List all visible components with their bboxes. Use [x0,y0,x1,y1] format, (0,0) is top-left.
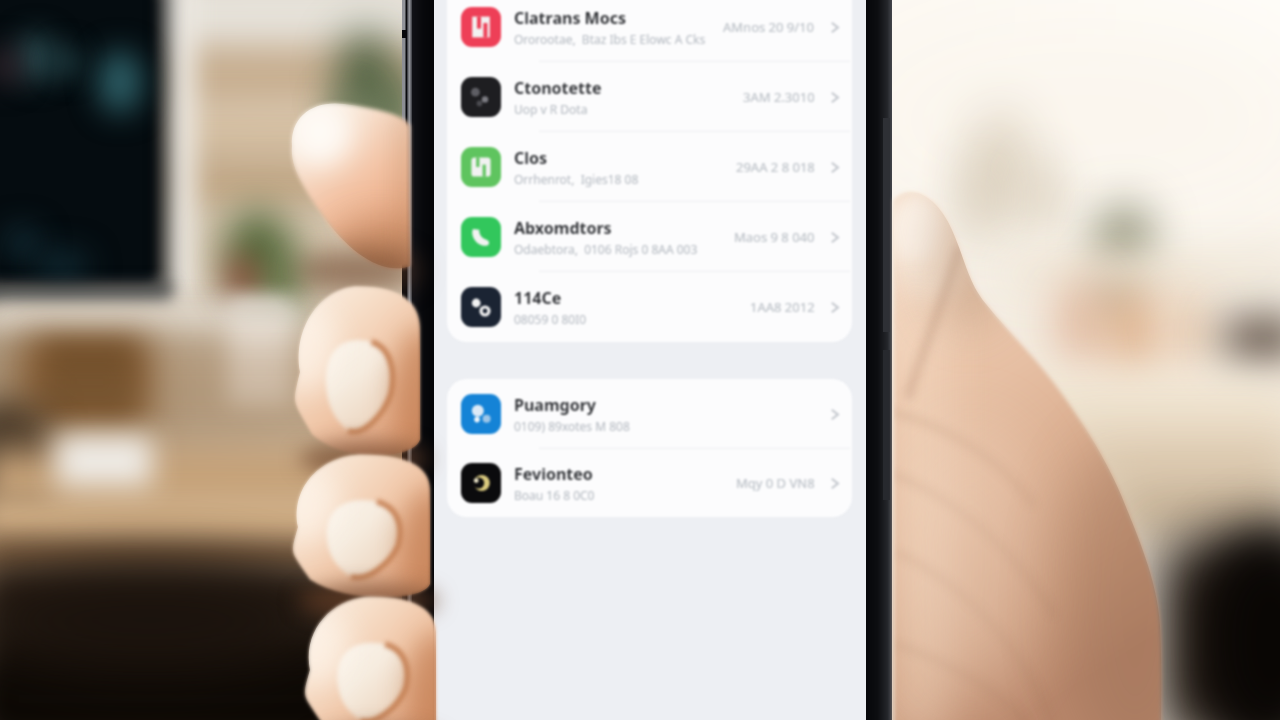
staticText: 29AA 2 8 018 [736,158,815,176]
staticText: Clos [514,147,548,169]
button[interactable]: Abxomdtors [447,202,852,272]
other: Open Clos [826,159,843,176]
other: Open Ctonotette [826,89,843,106]
button[interactable]: Clatrans Mocs [447,0,852,62]
button[interactable]: 114Ce [447,272,852,342]
staticText: 0109) 89xotes M 808 [514,418,630,434]
other: Open Fevionteo [826,475,843,492]
staticText: AMnos 20 9/10 [723,18,815,36]
staticText: Uop v R Dota [514,101,588,117]
staticText: Mqy 0 D VN8 [736,474,815,492]
staticText: 3AM 2.3010 [743,88,815,106]
staticText: Maos 9 8 040 [734,228,815,246]
other: Open Abxomdtors [826,229,843,246]
staticText: Fevionteo [514,463,593,485]
staticText: Boau 16 8 0C0 [514,487,595,503]
staticText: 08059 0 80I0 [514,311,587,327]
other: Open Puamgory [826,406,843,423]
staticText: 1AA8 2012 [750,298,815,316]
staticText: Orrhenrot, Igies18 08 [514,171,639,187]
other: Open Clatrans Mocs [826,19,843,36]
button[interactable]: Puamgory [447,379,852,449]
staticText: Abxomdtors [514,217,612,239]
staticText: Ctonotette [514,77,602,99]
other: Open 114Ce [826,299,843,316]
button[interactable]: Fevionteo [447,449,852,517]
staticText: Clatrans Mocs [514,7,626,29]
staticText: 114Ce [514,287,562,309]
button[interactable]: Clos [447,132,852,202]
button[interactable]: Ctonotette [447,62,852,132]
staticText: Ororootae, Btaz Ibs E Elowc A Cks [514,31,706,47]
staticText: Odaebtora, 0106 Rojs 0 8AA 003 [514,241,698,257]
staticText: Puamgory [514,394,596,416]
